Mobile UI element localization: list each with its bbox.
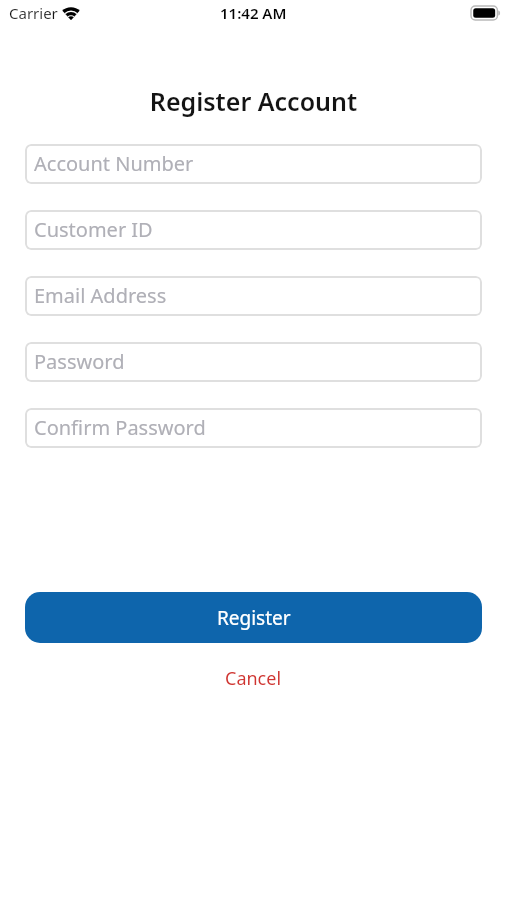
button[interactable]: Confirm Password: [25, 408, 482, 448]
button[interactable]: Customer ID: [25, 210, 482, 250]
button[interactable]: Register: [25, 592, 482, 643]
staticText: Password: [34, 348, 125, 375]
button[interactable]: Cancel: [225, 666, 282, 691]
button[interactable]: Email Address: [25, 276, 482, 316]
button[interactable]: Password: [25, 342, 482, 382]
staticText: Confirm Password: [34, 414, 206, 441]
staticText: Email Address: [34, 282, 167, 309]
staticText: Register: [217, 605, 291, 631]
staticText: Carrier: [9, 3, 58, 23]
button[interactable]: Account Number: [25, 144, 482, 184]
staticText: 11:42 AM: [220, 3, 287, 23]
staticText: Register Account: [25, 84, 482, 118]
staticText: Cancel: [225, 666, 282, 691]
staticText: Customer ID: [34, 216, 153, 243]
staticText: Account Number: [34, 150, 194, 177]
